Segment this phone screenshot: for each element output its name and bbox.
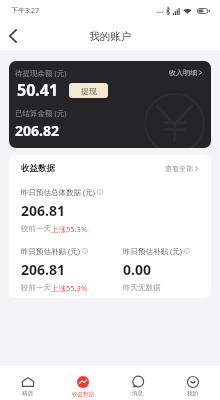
staticText: 昨日预估补贴 (元) <box>123 246 182 256</box>
staticText: 查看全部 <box>165 164 193 173</box>
staticText: 收益数据 <box>21 163 55 174</box>
staticText: 206.82 <box>15 121 59 140</box>
staticText: 已结算金额 (元) <box>15 108 67 118</box>
staticText: 昨日预估总体数据 (元) <box>21 187 95 197</box>
staticText: 50.41 <box>17 79 59 101</box>
staticText: 206.81 <box>21 201 65 220</box>
staticText: 待提现余额 (元) <box>15 68 67 78</box>
staticText: 上涨55.3% <box>51 224 88 234</box>
staticText: 206.81 <box>21 260 65 279</box>
staticText: 0.00 <box>123 260 151 279</box>
button[interactable]: 收入明细 <box>167 66 205 79</box>
staticText: 提现 <box>81 86 97 96</box>
staticText: 较前一天 <box>21 224 51 233</box>
staticText: 收入明细 <box>169 68 197 77</box>
button[interactable]: 我的 <box>165 368 220 398</box>
button[interactable]: 精选 <box>0 368 55 398</box>
staticText: 消息 <box>132 390 143 397</box>
staticText: 昨天无数据 <box>123 283 161 292</box>
staticText: 收益数据 <box>72 391 94 398</box>
button[interactable]: Back <box>3 27 21 45</box>
staticText: 下午3:27 <box>11 6 39 16</box>
staticText: 昨日预估补贴 (元) <box>21 246 80 256</box>
button[interactable]: 查看全部 <box>163 162 201 175</box>
button[interactable]: 提现 <box>69 83 108 98</box>
button[interactable]: 消息 <box>110 368 165 398</box>
staticText: 上涨55.3% <box>51 283 88 293</box>
staticText: 我的账户 <box>89 30 131 43</box>
button[interactable]: 收益数据 <box>55 367 110 399</box>
staticText: 较前一天 <box>21 283 51 292</box>
staticText: 精选 <box>22 390 33 397</box>
staticText: 我的 <box>187 390 198 397</box>
